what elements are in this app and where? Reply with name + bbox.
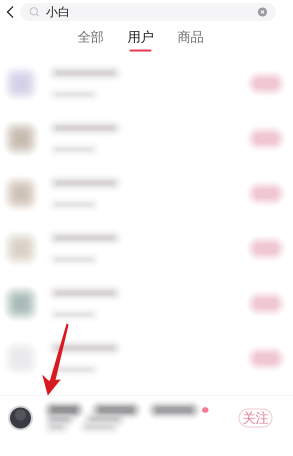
button[interactable] [0, 166, 293, 221]
button[interactable]: 商品 [177, 24, 203, 56]
button[interactable] [0, 56, 293, 111]
button[interactable] [0, 221, 293, 276]
button[interactable]: 全部 [77, 24, 103, 56]
staticText: 商品 [177, 29, 203, 45]
button[interactable] [0, 276, 293, 331]
staticText: 用户 [127, 29, 153, 45]
staticText: 小白 [46, 5, 70, 19]
button[interactable] [0, 111, 293, 166]
button[interactable]: 小白 [20, 3, 276, 21]
button[interactable]: 用户 [127, 24, 153, 56]
button[interactable]: 关注 [0, 396, 293, 440]
button[interactable] [0, 331, 293, 386]
button[interactable]: Back [0, 0, 20, 24]
staticText: 关注 [242, 410, 268, 426]
staticText: 全部 [77, 29, 103, 45]
